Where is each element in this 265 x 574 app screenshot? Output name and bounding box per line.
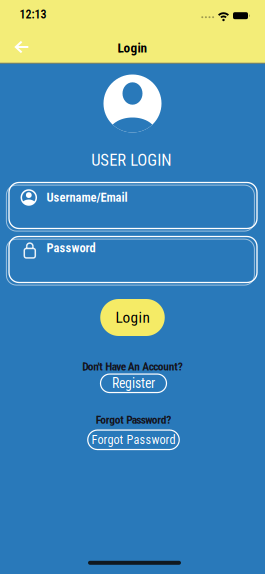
button[interactable]: Password [6, 234, 259, 285]
staticText: Login [117, 40, 147, 56]
button[interactable]: Login [100, 299, 165, 336]
button[interactable]: Username/Email [6, 180, 259, 231]
staticText: Password [46, 241, 95, 255]
staticText: Forgot Password [91, 433, 175, 447]
staticText: USER LOGIN [91, 150, 171, 170]
button[interactable]: Forgot Password [88, 430, 179, 450]
button[interactable]: Back [7, 32, 37, 62]
staticText: Forgot Password? [96, 413, 171, 426]
staticText: Don't Have An Account? [82, 360, 183, 373]
staticText: Login [115, 308, 149, 326]
staticText: Username/Email [46, 190, 127, 205]
staticText: Register [112, 375, 155, 391]
button[interactable]: Register [100, 374, 166, 393]
staticText: 12:13 [19, 7, 46, 22]
